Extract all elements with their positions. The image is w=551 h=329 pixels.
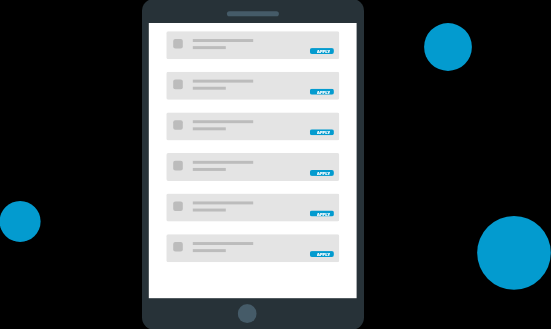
button[interactable]: Apply: [310, 129, 334, 135]
button[interactable]: Apply: [166, 234, 339, 262]
button[interactable]: Apply: [166, 194, 339, 222]
button[interactable]: Apply: [166, 153, 339, 181]
button[interactable]: Apply: [310, 48, 334, 54]
button[interactable]: Apply: [310, 89, 334, 95]
button[interactable]: Apply: [310, 210, 334, 216]
button[interactable]: Apply: [166, 112, 339, 140]
button[interactable]: Apply: [310, 170, 334, 176]
button[interactable]: Apply: [166, 72, 339, 100]
button[interactable]: Apply: [310, 251, 334, 257]
button[interactable]: Apply: [166, 31, 339, 59]
button[interactable]: Home: [238, 304, 257, 323]
